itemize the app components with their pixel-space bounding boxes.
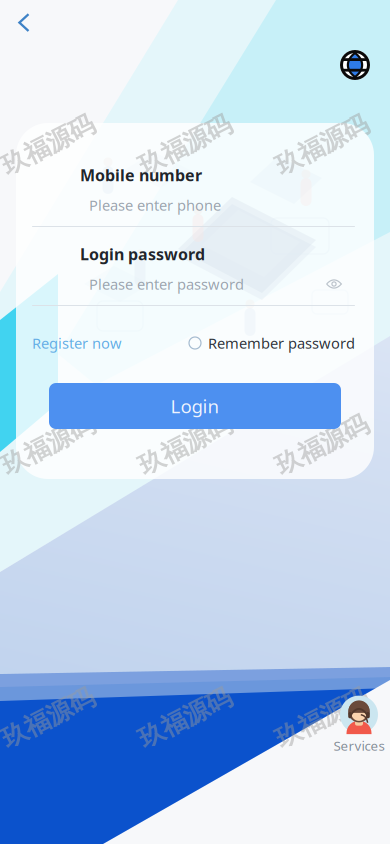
staticText: Services xyxy=(333,737,384,754)
staticText: 玖福源码 xyxy=(135,429,235,460)
staticText: Login xyxy=(170,394,219,418)
button[interactable]: Login xyxy=(49,383,341,429)
staticText: 玖福源码 xyxy=(135,129,235,160)
staticText: 玖福源码 xyxy=(272,429,372,460)
staticText: Remember password xyxy=(208,333,355,353)
staticText: 玖福源码 xyxy=(0,129,98,160)
button[interactable]: Please enter phone xyxy=(89,188,356,222)
button[interactable]: Register now xyxy=(32,328,132,358)
staticText: Please enter password xyxy=(89,274,244,294)
staticText: 玖福源码 xyxy=(272,129,372,160)
staticText: 玖福源码 xyxy=(272,702,372,733)
staticText: 玖福源码 xyxy=(0,429,98,460)
staticText: Mobile number xyxy=(80,164,202,186)
staticText: 玖福源码 xyxy=(135,702,235,733)
staticText: Register now xyxy=(32,333,122,353)
staticText: Login password xyxy=(80,243,205,265)
staticText: 玖福源码 xyxy=(0,702,98,733)
button[interactable]: Language xyxy=(333,43,377,87)
button[interactable]: Please enter password xyxy=(89,267,356,301)
button[interactable]: Show password xyxy=(317,269,351,299)
staticText: Please enter phone xyxy=(89,195,221,215)
button[interactable]: Services xyxy=(326,696,390,754)
button[interactable]: Back xyxy=(2,1,46,45)
button[interactable]: Remember password xyxy=(189,328,357,358)
